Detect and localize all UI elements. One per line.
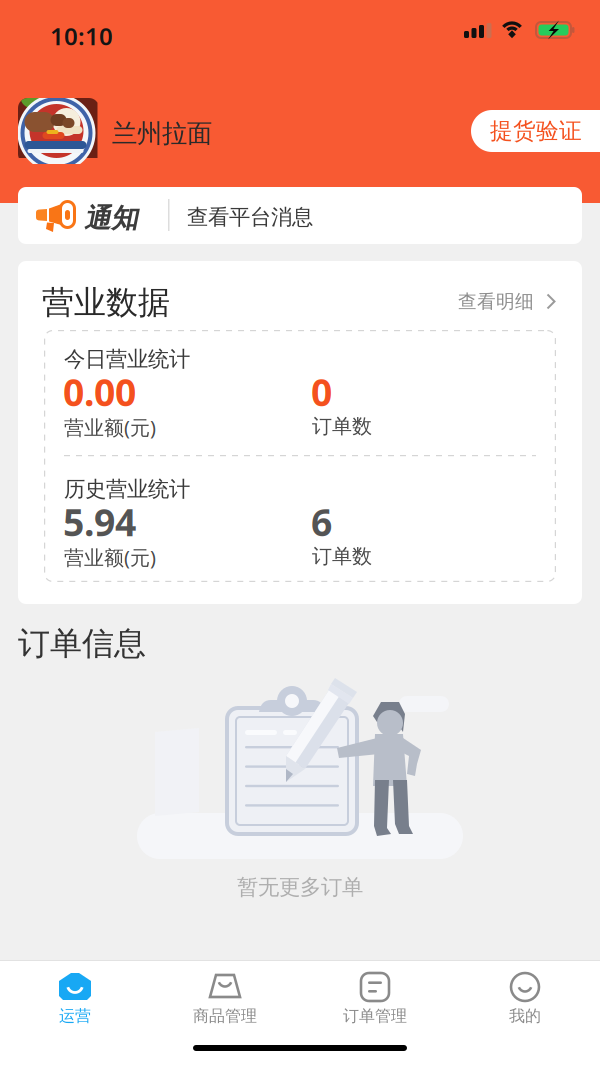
button[interactable]: 订单管理 [300,964,450,1038]
button[interactable]: 商品管理 [150,964,300,1038]
staticText: 营业额(元) [64,544,156,571]
staticText: 6 [311,497,332,547]
staticText: 0.00 [63,367,136,417]
staticText: 查看明细 [458,290,534,313]
staticText: 营业额(元) [64,414,156,441]
staticText: 商品管理 [193,1006,257,1026]
staticText: 5.94 [63,497,136,547]
staticText: 兰州拉面 [112,118,212,149]
button[interactable]: 我的 [450,964,600,1038]
staticText: 今日营业统计 [64,346,190,372]
staticText: 订单管理 [343,1006,407,1026]
staticText: 订单信息 [18,624,146,663]
staticText: 0 [311,367,332,417]
button[interactable]: 通知 [18,187,582,244]
staticText: 查看平台消息 [187,204,313,230]
staticText: 提货验证 [490,117,582,145]
staticText: 10:10 [50,20,113,52]
button[interactable]: 提货验证 [471,110,600,152]
button[interactable]: 运营 [0,964,150,1038]
staticText: 历史营业统计 [64,476,190,502]
staticText: 我的 [509,1006,541,1026]
staticText: 营业数据 [42,283,170,322]
staticText: 订单数 [312,414,372,439]
staticText: 订单数 [312,544,372,569]
staticText: 运营 [59,1006,91,1026]
button[interactable]: 查看明细 [458,290,556,313]
staticText: 暂无更多订单 [237,874,363,900]
staticText: 通知 [84,202,138,235]
